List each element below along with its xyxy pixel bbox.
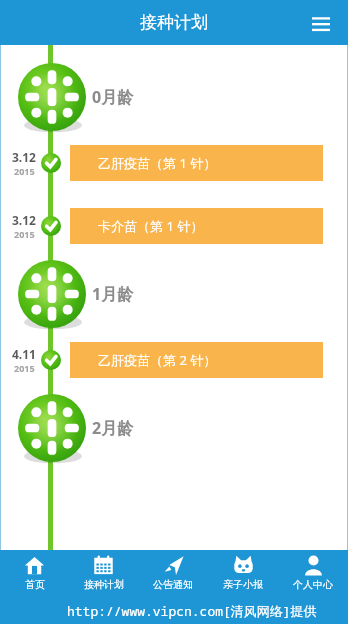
staticText: 2015 [14, 362, 35, 374]
button[interactable]: 公告通知 Notices [138, 550, 208, 597]
button[interactable]: 亲子小报 Parenting news [208, 550, 278, 597]
button[interactable]: 首页 Home [0, 550, 69, 597]
staticText: 乙肝疫苗（第 1 针） [98, 154, 217, 172]
staticText: 卡介苗（第 1 针） [98, 217, 204, 235]
button[interactable]: Menu [306, 8, 336, 38]
staticText: 1月龄 [92, 283, 134, 305]
button[interactable]: 个人中心 Profile [278, 550, 348, 597]
staticText: 接种计划 [140, 12, 208, 33]
staticText: 个人中心 [293, 578, 333, 591]
button[interactable]: 2月龄 [0, 392, 348, 464]
button[interactable]: 3.12 [0, 141, 348, 185]
staticText: 接种计划 [84, 578, 124, 591]
button[interactable]: 接种计划 Vaccination plan [69, 550, 138, 597]
staticText: 2015 [14, 228, 35, 240]
staticText: 3.12 [12, 149, 36, 165]
staticText: 首页 [25, 578, 45, 591]
staticText: http://www.vipcn.com[清风网络]提供 [67, 602, 317, 620]
button[interactable]: 1月龄 [0, 258, 348, 330]
button[interactable]: 0月龄 [0, 61, 348, 133]
staticText: 4.11 [12, 346, 36, 362]
staticText: 3.12 [12, 212, 36, 228]
button[interactable]: 3.12 [0, 204, 348, 248]
staticText: 2月龄 [92, 417, 134, 439]
staticText: 乙肝疫苗（第 2 针） [98, 351, 217, 369]
staticText: 公告通知 [153, 578, 193, 591]
staticText: 亲子小报 [223, 578, 263, 591]
staticText: 0月龄 [92, 86, 134, 108]
button[interactable]: 4.11 [0, 338, 348, 382]
staticText: 2015 [14, 165, 35, 177]
